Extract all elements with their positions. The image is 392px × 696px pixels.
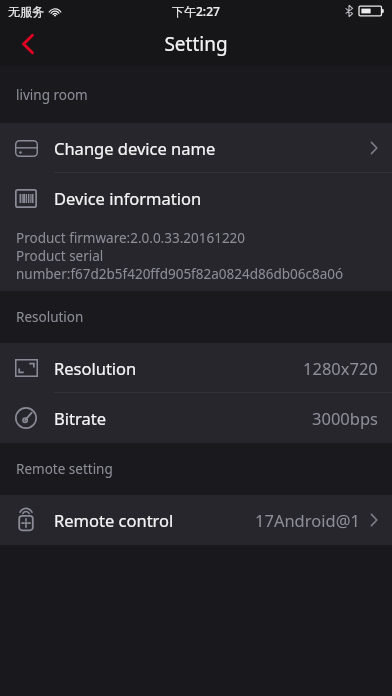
staticText: Change device name [54,137,216,159]
staticText: 下午2:27 [172,3,220,19]
staticText: 3000bps [312,407,378,429]
staticText: Remote setting [16,460,113,478]
button[interactable]: Back [0,22,56,66]
staticText: 无服务 [8,4,44,19]
staticText: Remote control [54,509,174,531]
staticText: 1280x720 [303,357,378,379]
button[interactable]: Bitrate [0,393,392,443]
staticText: Product serial [16,247,104,265]
staticText: Resolution [54,357,137,379]
button[interactable]: Resolution [0,343,392,393]
button[interactable]: Change device name [0,123,392,173]
staticText: Bitrate [54,407,106,429]
staticText: Product firmware:2.0.0.33.20161220 [16,229,246,247]
staticText: number:f67d2b5f420ffd905f82a0824d86db06c… [16,265,344,283]
staticText: Resolution [16,308,84,326]
button[interactable]: Remote control [0,495,392,545]
button[interactable]: Device information [0,173,392,223]
staticText: Setting [164,31,228,57]
staticText: Device information [54,187,202,209]
staticText: 17Android@1 [255,509,360,531]
staticText: living room [16,86,88,104]
